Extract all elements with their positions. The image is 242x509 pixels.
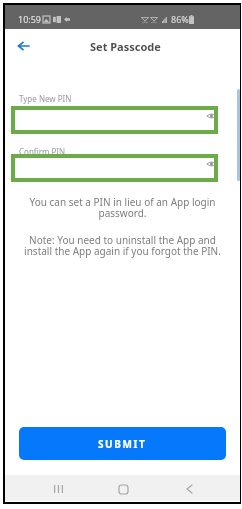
staticText: You can set a PIN in lieu of an App logi…	[25, 195, 220, 220]
staticText: 86%	[171, 13, 189, 25]
other: Show PIN	[207, 161, 216, 167]
staticText: Note: You need to uninstall the App and …	[19, 233, 226, 258]
button[interactable]: Back	[12, 35, 34, 57]
staticText: Confirm PIN	[19, 146, 66, 157]
button[interactable]: Show PIN	[11, 154, 218, 182]
other: Show PIN	[207, 113, 216, 119]
staticText: Type New PIN	[19, 93, 72, 104]
button[interactable]: Back	[169, 476, 209, 502]
staticText: SUBMIT	[98, 437, 147, 451]
staticText: Set Passcode	[90, 39, 161, 54]
button[interactable]: SUBMIT	[19, 427, 226, 460]
button[interactable]: Show PIN	[11, 106, 218, 134]
button[interactable]: Home	[103, 476, 143, 502]
staticText: 10:59	[18, 13, 42, 25]
button[interactable]: Recent apps	[38, 476, 78, 502]
